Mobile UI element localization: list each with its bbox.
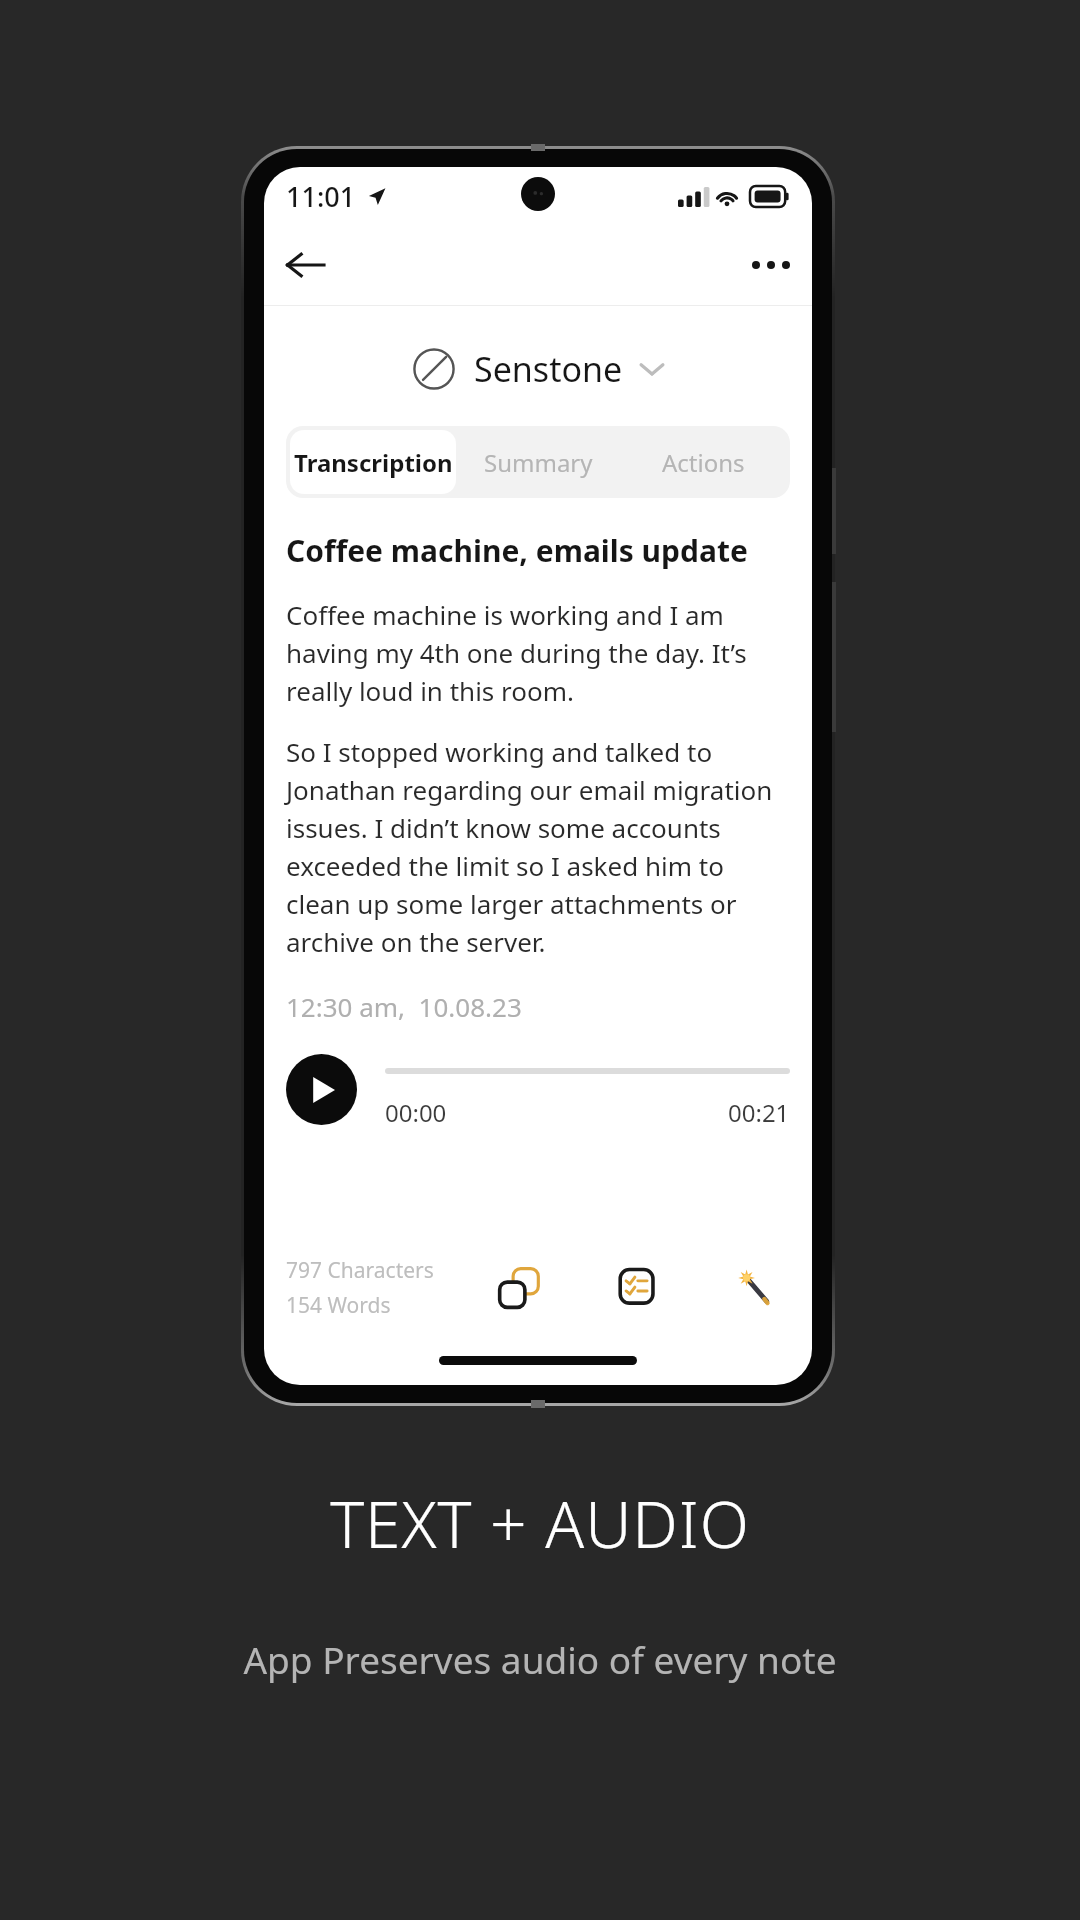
button[interactable]: Play xyxy=(286,1054,357,1125)
staticText: App Preserves audio of every note xyxy=(243,1634,837,1684)
button[interactable]: Tasks xyxy=(602,1253,672,1323)
staticText: So I stopped working and talked to Jonat… xyxy=(286,734,790,959)
button[interactable]: More options xyxy=(740,234,802,296)
staticText: 797 Characters xyxy=(286,1256,434,1285)
staticText: TEXT + AUDIO xyxy=(330,1480,750,1567)
staticText: Transcription xyxy=(294,446,453,479)
staticText: 11:01 xyxy=(286,178,356,215)
staticText: Coffee machine is working and I am havin… xyxy=(286,597,790,708)
staticText: 154 Words xyxy=(286,1291,391,1320)
staticText: 12:30 am, 10.08.23 xyxy=(286,989,522,1024)
staticText: 00:00 xyxy=(385,1096,447,1129)
staticText: 00:21 xyxy=(728,1096,790,1129)
staticText: Senstone xyxy=(474,346,623,392)
staticText: Coffee machine, emails update xyxy=(286,530,748,571)
button[interactable]: Actions xyxy=(621,430,786,494)
button[interactable]: Magic xyxy=(720,1253,790,1323)
button[interactable]: Transcription xyxy=(290,430,456,494)
button[interactable]: Copy xyxy=(484,1253,554,1323)
staticText: Actions xyxy=(662,446,745,479)
button[interactable]: Summary xyxy=(456,430,621,494)
staticText: Summary xyxy=(484,446,593,479)
button[interactable]: Senstone xyxy=(264,346,812,392)
button[interactable]: Back xyxy=(274,234,336,296)
